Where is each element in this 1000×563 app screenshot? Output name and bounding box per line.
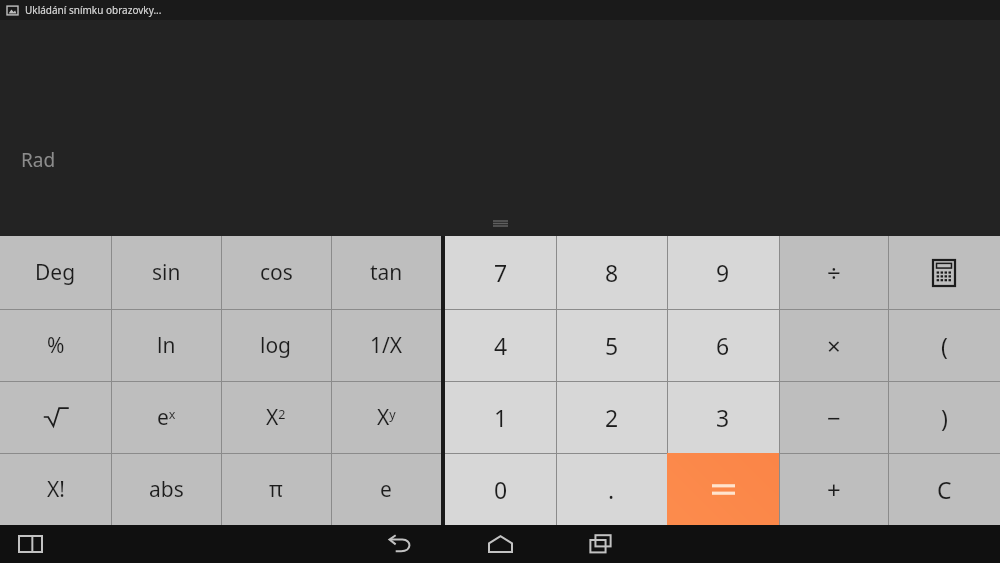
button[interactable]: Back (367, 525, 433, 563)
button[interactable]: π (221, 453, 331, 525)
button[interactable]: − (779, 381, 888, 453)
staticText: X2 (266, 403, 286, 432)
button[interactable]: Calculator (888, 236, 1000, 309)
staticText: ) (941, 402, 948, 433)
staticText: Deg (35, 258, 76, 287)
staticText: ex (157, 403, 176, 432)
button[interactable]: 8 (556, 236, 667, 309)
staticText: C (937, 474, 952, 505)
button[interactable]: 1/X (331, 309, 441, 381)
button[interactable]: 6 (667, 309, 779, 381)
button[interactable]: abs (111, 453, 221, 525)
button[interactable]: × (779, 309, 888, 381)
staticText: ( (941, 330, 948, 361)
staticText: 4 (494, 330, 508, 361)
staticText: + (827, 473, 841, 506)
button[interactable]: X! (0, 453, 111, 525)
button[interactable]: 7 (445, 236, 556, 309)
button[interactable]: Xy (331, 381, 441, 453)
staticText: × (827, 329, 841, 362)
staticText: 8 (605, 257, 619, 288)
staticText: 9 (716, 257, 730, 288)
staticText: tan (370, 258, 403, 287)
button[interactable]: 2 (556, 381, 667, 453)
button[interactable]: 9 (667, 236, 779, 309)
button[interactable]: ) (888, 381, 1000, 453)
staticText: abs (149, 475, 184, 504)
button[interactable]: 1 (445, 381, 556, 453)
button[interactable]: . (556, 453, 667, 525)
button[interactable]: ln (111, 309, 221, 381)
staticText: log (260, 331, 292, 360)
staticText: 7 (494, 257, 508, 288)
staticText: X! (47, 475, 65, 504)
button[interactable]: Home (467, 525, 533, 563)
button[interactable] (0, 381, 111, 453)
staticText: π (269, 475, 283, 504)
staticText: Rad (21, 147, 56, 173)
button[interactable]: sin (111, 236, 221, 309)
staticText: cos (260, 258, 293, 287)
staticText: 5 (605, 330, 619, 361)
staticText: . (608, 474, 615, 505)
button[interactable]: ( (888, 309, 1000, 381)
staticText: 2 (605, 402, 619, 433)
staticText: sin (152, 258, 181, 287)
button[interactable]: ex (111, 381, 221, 453)
button[interactable]: 4 (445, 309, 556, 381)
staticText: − (827, 401, 841, 434)
button[interactable]: Split screen (12, 526, 48, 562)
button[interactable]: 0 (445, 453, 556, 525)
button[interactable]: Deg (0, 236, 111, 309)
staticText: 0 (494, 474, 508, 505)
button[interactable]: Recent apps (567, 525, 633, 563)
button[interactable]: e (331, 453, 441, 525)
staticText: ln (157, 331, 176, 360)
button[interactable]: C (888, 453, 1000, 525)
staticText: e (380, 475, 392, 504)
staticText: 1 (494, 402, 508, 433)
button[interactable] (667, 453, 779, 525)
staticText: Xy (377, 403, 396, 432)
button[interactable]: X2 (221, 381, 331, 453)
staticText: Ukládání snímku obrazovky... (25, 3, 162, 17)
staticText: 1/X (370, 331, 403, 360)
button[interactable]: 5 (556, 309, 667, 381)
button[interactable]: tan (331, 236, 441, 309)
staticText: ÷ (827, 256, 841, 289)
button[interactable]: % (0, 309, 111, 381)
button[interactable]: 3 (667, 381, 779, 453)
staticText: 3 (716, 402, 730, 433)
button[interactable]: log (221, 309, 331, 381)
button[interactable]: cos (221, 236, 331, 309)
button[interactable]: ÷ (779, 236, 888, 309)
staticText: 6 (716, 330, 730, 361)
staticText: % (47, 331, 65, 360)
button[interactable]: + (779, 453, 888, 525)
